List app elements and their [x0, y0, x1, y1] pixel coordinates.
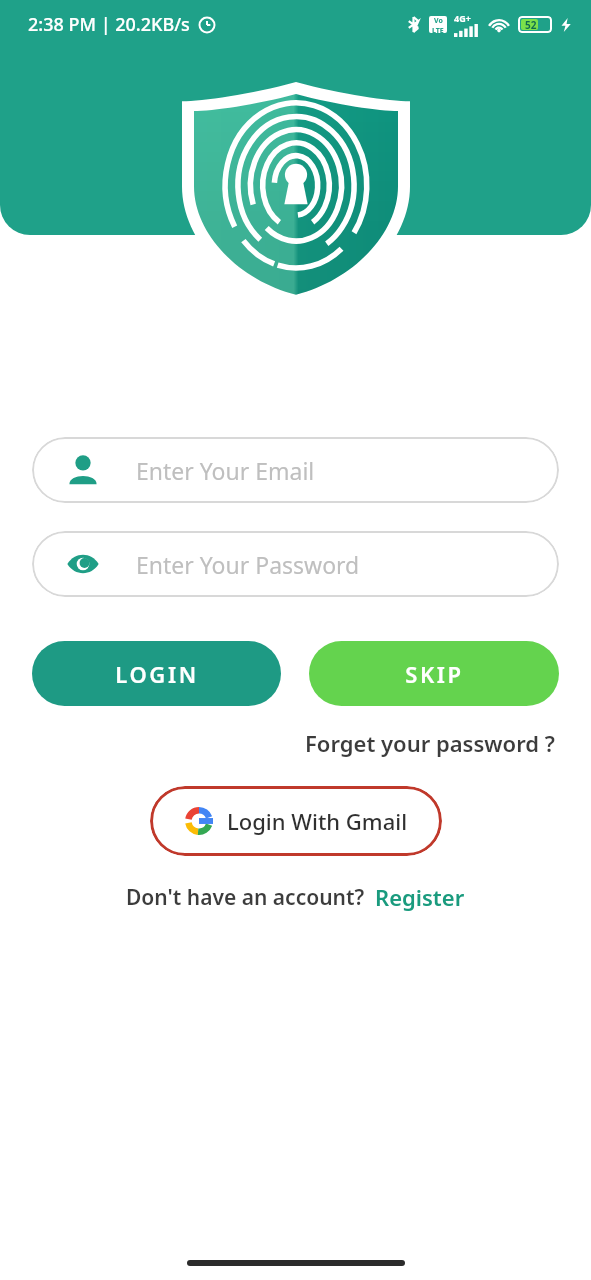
- staticText: 2:38 PM | 20.2KB/s: [28, 12, 190, 37]
- button[interactable]: LOGIN: [32, 641, 281, 706]
- staticText: Enter Your Password: [136, 549, 360, 580]
- staticText: Enter Your Email: [136, 455, 315, 486]
- button[interactable]: Show password: [32, 531, 559, 597]
- button[interactable]: Register: [375, 882, 465, 912]
- staticText: Don't have an account?: [126, 883, 365, 912]
- button[interactable]: Forget your password ?: [299, 722, 561, 764]
- staticText: LOGIN: [115, 659, 199, 689]
- button[interactable]: SKIP: [309, 641, 559, 706]
- staticText: Login With Gmail: [227, 806, 408, 836]
- staticText: LTE: [432, 26, 444, 33]
- staticText: SKIP: [405, 659, 464, 689]
- staticText: Register: [375, 882, 465, 912]
- staticText: Forget your password ?: [305, 728, 555, 758]
- button[interactable]: Email icon: [32, 437, 559, 503]
- staticText: Vo: [434, 16, 443, 26]
- button[interactable]: Login With Gmail: [150, 786, 442, 856]
- staticText: 4G+: [454, 12, 471, 24]
- staticText: 52: [525, 18, 537, 32]
